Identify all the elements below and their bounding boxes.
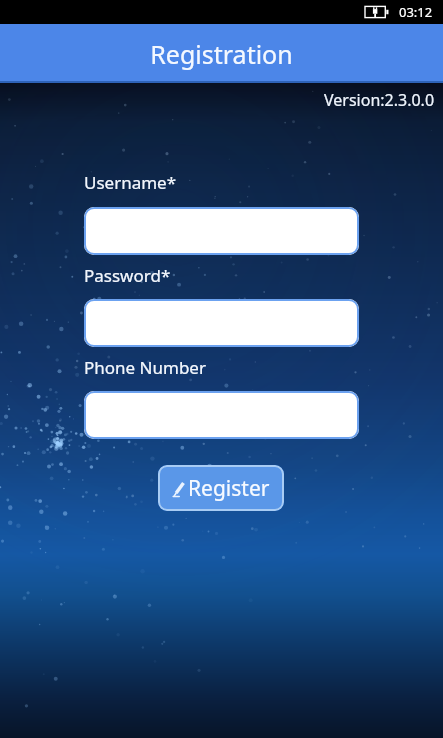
staticText: Registration bbox=[150, 37, 293, 71]
button[interactable]: Text input field bbox=[84, 299, 359, 347]
staticText: 03:12 bbox=[399, 3, 433, 21]
staticText: Register bbox=[188, 474, 270, 503]
button[interactable]: Register bbox=[158, 465, 284, 511]
staticText: Version:2.3.0.0 bbox=[324, 89, 435, 111]
staticText: Password* bbox=[84, 264, 171, 287]
staticText: Username* bbox=[84, 171, 177, 194]
button[interactable]: Text input field bbox=[84, 391, 359, 439]
staticText: Phone Number bbox=[84, 356, 206, 379]
button[interactable]: Text input field bbox=[84, 207, 359, 255]
